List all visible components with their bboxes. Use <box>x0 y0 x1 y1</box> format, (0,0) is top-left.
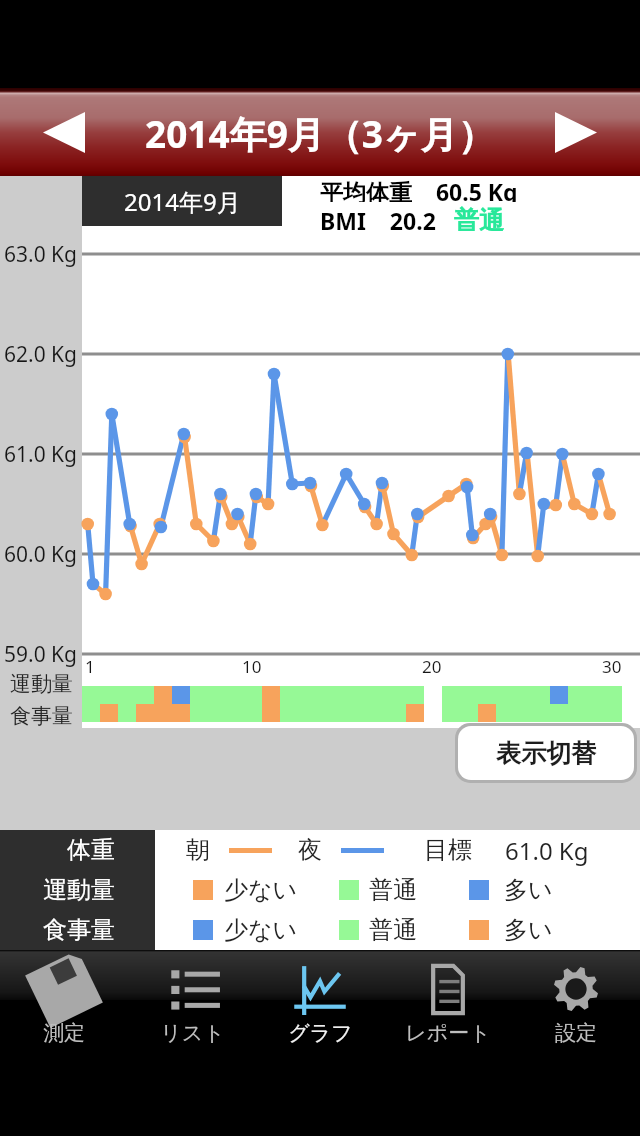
staticText: 61.0 Kg <box>4 440 78 469</box>
staticText: グラフ <box>288 1020 353 1046</box>
staticText: 2014年9月 <box>124 185 241 218</box>
button[interactable]: 表示切替 <box>458 726 634 780</box>
staticText: リスト <box>160 1020 225 1046</box>
staticText: 59.0 Kg <box>4 640 78 669</box>
staticText: 30 <box>602 655 622 677</box>
staticText: 2014年9月（3ヶ月） <box>145 108 495 159</box>
staticText: 少ない <box>224 875 298 905</box>
staticText: 平均体重 60.5 Kg <box>320 176 518 202</box>
staticText: 測定 <box>43 1020 85 1046</box>
button[interactable]: Previous month <box>34 102 94 162</box>
staticText: 朝 <box>186 835 210 865</box>
staticText: 1 <box>85 655 95 677</box>
staticText: 61.0 Kg <box>505 834 589 867</box>
staticText: 目標 <box>424 835 472 865</box>
staticText: 体重 <box>67 835 115 865</box>
staticText: 夜 <box>298 835 322 865</box>
staticText: 食事量 <box>10 703 73 729</box>
staticText: 20 <box>422 655 442 677</box>
staticText: レポート <box>405 1020 491 1046</box>
button[interactable]: Next month <box>546 102 606 162</box>
staticText: 運動量 <box>43 875 115 905</box>
staticText: 10 <box>242 655 262 677</box>
staticText: 運動量 <box>10 671 73 697</box>
staticText: 表示切替 <box>496 738 596 769</box>
staticText: 普通 <box>454 205 504 231</box>
staticText: 普通 <box>369 875 417 905</box>
button[interactable]: リスト <box>128 950 256 1060</box>
button[interactable]: 設定 <box>512 950 640 1060</box>
staticText: 設定 <box>555 1020 597 1046</box>
staticText: 多い <box>504 875 553 905</box>
button[interactable]: グラフ <box>256 950 384 1060</box>
staticText: 普通 <box>369 915 417 945</box>
staticText: 多い <box>504 915 553 945</box>
staticText: 食事量 <box>43 915 115 945</box>
staticText: 63.0 Kg <box>4 240 78 269</box>
staticText: 62.0 Kg <box>4 340 78 369</box>
staticText: BMI 20.2 <box>320 205 454 231</box>
button[interactable]: 測定 <box>0 950 128 1060</box>
staticText: 少ない <box>224 915 298 945</box>
staticText: 60.0 Kg <box>4 540 78 569</box>
button[interactable]: レポート <box>384 950 512 1060</box>
